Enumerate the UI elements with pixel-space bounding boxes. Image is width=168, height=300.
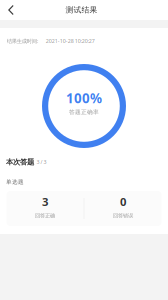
- staticText: 3: [42, 194, 48, 209]
- staticText: 0: [120, 194, 126, 209]
- staticText: 结果生成时间:: [7, 37, 38, 45]
- staticText: 回答正确: [35, 212, 55, 219]
- staticText: 测试结果: [65, 5, 97, 15]
- staticText: 2021-10-28 10:20:27: [46, 37, 95, 45]
- staticText: 100%: [66, 89, 102, 107]
- staticText: 单选题: [6, 178, 24, 186]
- staticText: 回答错误: [113, 212, 133, 219]
- staticText: 3 / 3: [36, 158, 46, 166]
- button[interactable]: 返回: [0, 0, 22, 20]
- staticText: 答题正确率: [69, 108, 99, 116]
- staticText: 本次答题: [6, 157, 34, 167]
